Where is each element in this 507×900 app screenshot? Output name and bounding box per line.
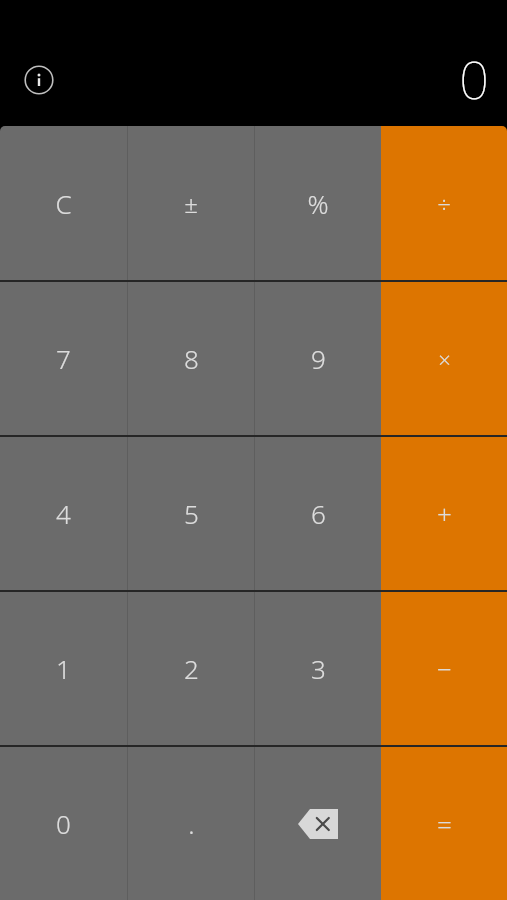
button[interactable]: 7: [0, 282, 127, 435]
staticText: 3: [311, 651, 326, 686]
staticText: 1: [56, 651, 71, 686]
staticText: =: [437, 806, 452, 841]
staticText: 2: [184, 651, 199, 686]
button[interactable]: 9: [255, 282, 381, 435]
button[interactable]: −: [381, 592, 507, 745]
button[interactable]: Info: [22, 63, 56, 97]
button[interactable]: ÷: [381, 126, 507, 280]
staticText: 5: [184, 496, 199, 531]
button[interactable]: 1: [0, 592, 127, 745]
staticText: .: [188, 806, 195, 841]
staticText: ÷: [437, 187, 451, 220]
staticText: 0: [459, 43, 489, 114]
button[interactable]: +: [381, 437, 507, 590]
staticText: 4: [56, 496, 71, 531]
button[interactable]: C: [0, 126, 127, 280]
button[interactable]: 2: [128, 592, 254, 745]
staticText: C: [55, 186, 72, 221]
staticText: 0: [56, 806, 71, 841]
staticText: 7: [56, 341, 71, 376]
staticText: 8: [184, 341, 199, 376]
button[interactable]: ±: [128, 126, 254, 280]
staticText: 6: [311, 496, 326, 531]
button[interactable]: %: [255, 126, 381, 280]
button[interactable]: =: [381, 747, 507, 900]
staticText: −: [437, 651, 452, 686]
staticText: +: [437, 496, 452, 531]
staticText: ×: [438, 344, 451, 374]
staticText: ±: [184, 187, 198, 220]
button[interactable]: 4: [0, 437, 127, 590]
staticText: 9: [311, 341, 326, 376]
button[interactable]: ×: [381, 282, 507, 435]
staticText: %: [307, 186, 329, 221]
button[interactable]: 0: [0, 747, 127, 900]
button[interactable]: 5: [128, 437, 254, 590]
button[interactable]: 8: [128, 282, 254, 435]
button[interactable]: 6: [255, 437, 381, 590]
button[interactable]: Backspace: [255, 747, 381, 900]
button[interactable]: 3: [255, 592, 381, 745]
